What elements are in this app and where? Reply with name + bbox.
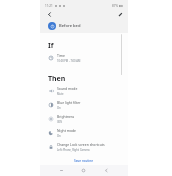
button[interactable]: Time bbox=[40, 51, 128, 65]
button[interactable]: Back bbox=[95, 165, 118, 176]
staticText: If bbox=[48, 41, 54, 51]
staticText: Blue light filter bbox=[57, 100, 81, 105]
button[interactable]: Before bed bbox=[40, 19, 128, 32]
staticText: Time bbox=[57, 53, 65, 58]
button[interactable]: Recent apps bbox=[50, 165, 72, 176]
staticText: On bbox=[57, 134, 61, 138]
button[interactable]: Change Lock screen shortcuts bbox=[40, 140, 128, 154]
button[interactable]: Home bbox=[72, 165, 95, 176]
staticText: Sound mode bbox=[57, 86, 78, 91]
button[interactable]: Edit bbox=[115, 9, 125, 19]
button[interactable]: Blue light filter bbox=[40, 98, 128, 112]
staticText: Mute bbox=[57, 92, 64, 96]
staticText: Save routine bbox=[74, 159, 94, 163]
button[interactable]: Brightness bbox=[40, 112, 128, 126]
button[interactable]: Night mode bbox=[40, 126, 128, 140]
staticText: 10:00 PM - 7:00 AM bbox=[57, 59, 81, 63]
staticText: 87% bbox=[112, 4, 118, 8]
staticText: 11:21 bbox=[45, 4, 53, 8]
button[interactable]: Save routine bbox=[40, 156, 128, 166]
staticText: Then bbox=[48, 74, 66, 84]
button[interactable]: Navigate up bbox=[44, 9, 54, 19]
staticText: Left: Phone, Right: Camera bbox=[57, 148, 90, 152]
staticText: Before bed bbox=[59, 23, 81, 29]
staticText: 30% bbox=[57, 120, 63, 124]
staticText: Brightness bbox=[57, 114, 75, 119]
staticText: On bbox=[57, 106, 61, 110]
button[interactable]: Sound mode bbox=[40, 84, 128, 98]
staticText: Night mode bbox=[57, 128, 76, 133]
staticText: Change Lock screen shortcuts bbox=[57, 142, 105, 147]
